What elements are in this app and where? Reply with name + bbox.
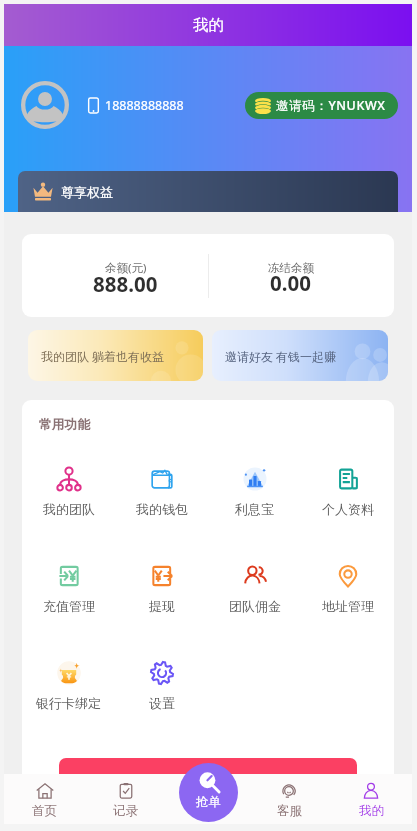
staticText: 我的团队 躺着也有收益 — [41, 348, 165, 364]
staticText: 充值管理 — [43, 598, 95, 614]
staticText: 首页 — [32, 803, 57, 819]
button[interactable]: 我的团队 躺着也有收益 — [28, 330, 203, 381]
button[interactable] — [59, 758, 357, 798]
button[interactable]: 地址管理 — [301, 564, 394, 614]
staticText: 记录 — [113, 803, 138, 819]
button[interactable]: 我的钱包 — [115, 467, 208, 517]
staticText: 设置 — [149, 695, 175, 711]
staticText: 0.00 — [270, 269, 311, 297]
staticText: 尊享权益 — [61, 184, 113, 200]
staticText: 提现 — [149, 598, 175, 614]
staticText: 888.00 — [93, 270, 158, 298]
staticText: 邀请好友 有钱一起赚 — [225, 348, 337, 364]
button[interactable]: 提现 — [115, 564, 208, 614]
button[interactable]: 尊享权益 — [18, 171, 398, 212]
staticText: 团队佣金 — [229, 598, 281, 614]
button[interactable]: 记录 — [85, 774, 166, 824]
staticText: 抢单 — [196, 794, 221, 810]
button[interactable]: 设置 — [115, 661, 208, 711]
button[interactable]: 抢单 — [179, 763, 238, 822]
button[interactable]: 银行卡绑定 — [22, 661, 115, 711]
staticText: 个人资料 — [322, 501, 374, 517]
staticText: 我的钱包 — [136, 501, 188, 517]
staticText: 我的团队 — [43, 501, 95, 517]
staticText: 客服 — [277, 803, 302, 819]
button[interactable]: 利息宝 — [208, 467, 301, 517]
staticText: 银行卡绑定 — [36, 695, 101, 711]
staticText: 冻结余额 — [268, 261, 314, 275]
staticText: 常用功能 — [39, 417, 91, 433]
staticText: 18888888888 — [105, 97, 184, 114]
button[interactable]: 充值管理 — [22, 564, 115, 614]
button[interactable]: 邀请码：YNUKWX — [245, 92, 398, 119]
staticText: 邀请码：YNUKWX — [276, 97, 386, 114]
staticText: 我的 — [359, 803, 384, 819]
staticText: 利息宝 — [235, 501, 274, 517]
staticText: 余额(元) — [105, 260, 147, 276]
button[interactable]: 客服 — [248, 774, 330, 824]
button[interactable]: 我的 — [330, 774, 412, 824]
button[interactable]: 邀请好友 有钱一起赚 — [212, 330, 388, 381]
staticText: 地址管理 — [322, 598, 374, 614]
staticText: 我的 — [193, 15, 224, 35]
button[interactable]: 首页 — [4, 774, 85, 824]
button[interactable]: 团队佣金 — [208, 564, 301, 614]
button[interactable]: 我的团队 — [22, 467, 115, 517]
button[interactable]: 个人资料 — [301, 467, 394, 517]
